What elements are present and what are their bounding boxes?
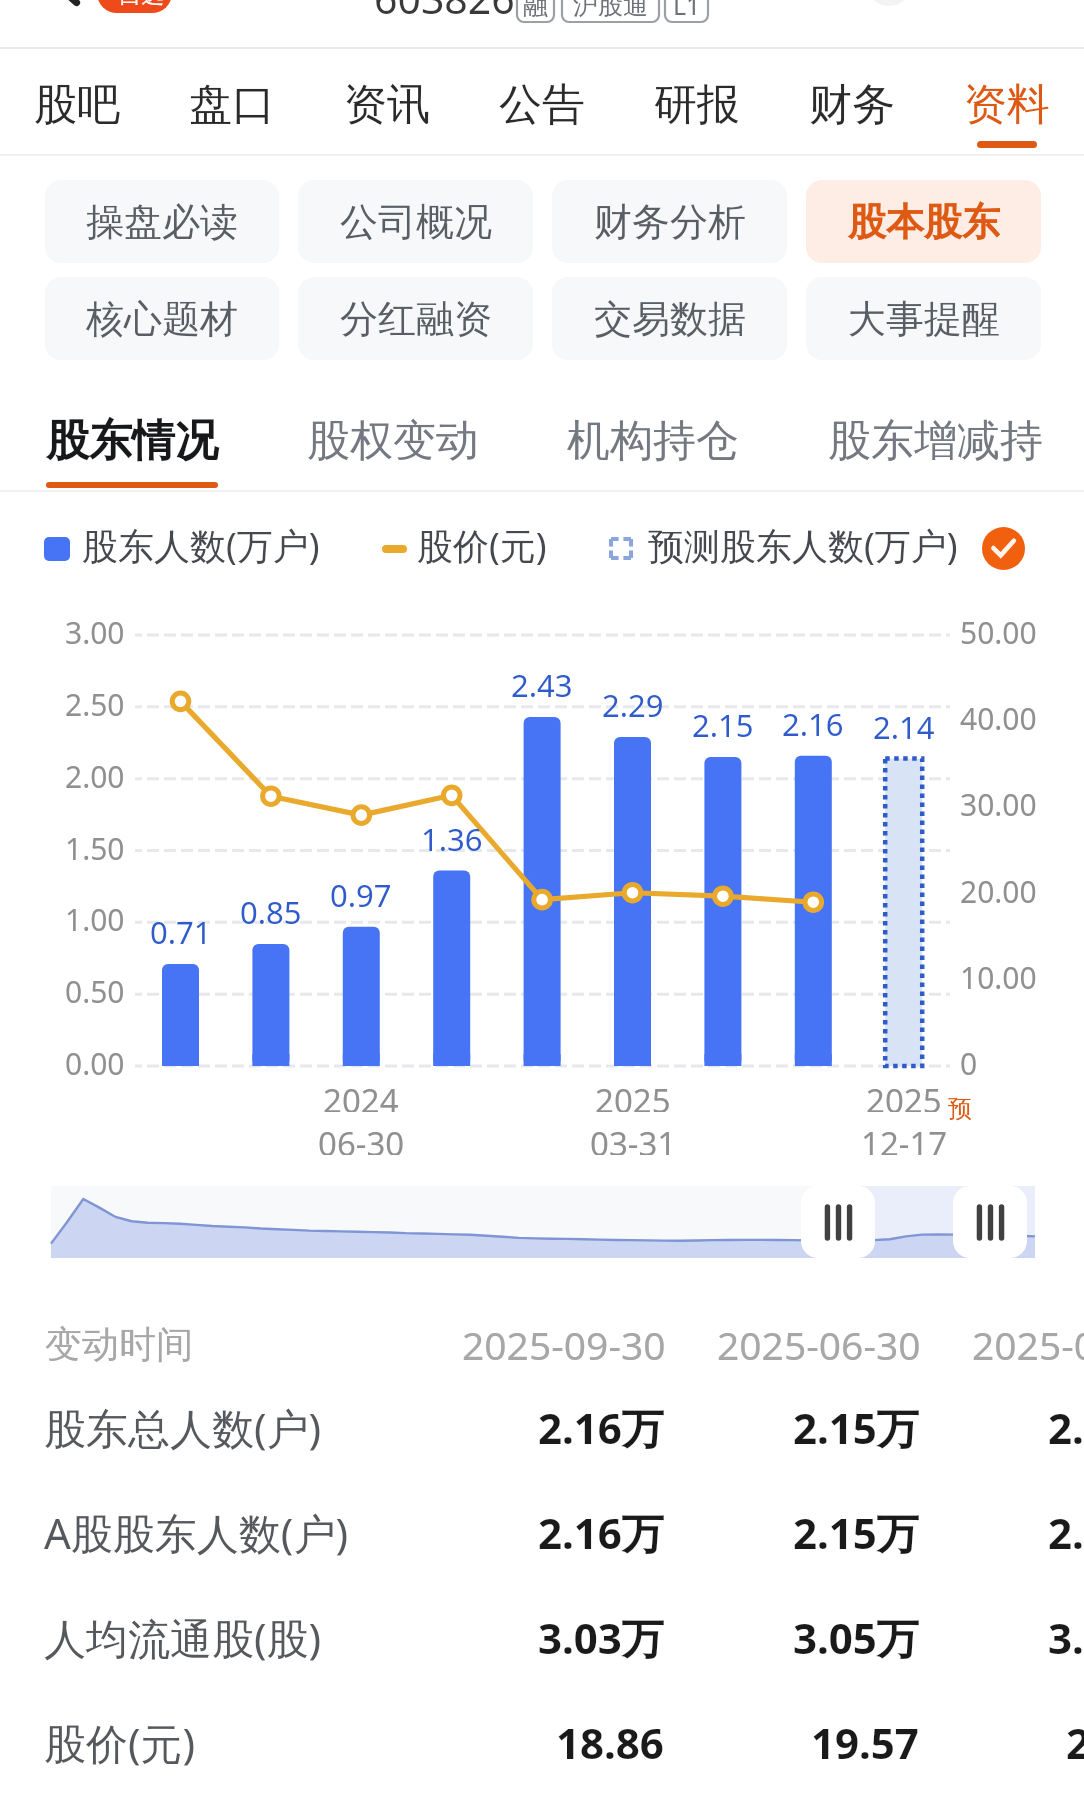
button[interactable]: 股价(元): [0, 1697, 1084, 1787]
staticText: 3.01万: [1048, 1609, 1084, 1666]
staticText: 3.00: [65, 612, 125, 653]
staticText: 融: [523, 0, 548, 21]
button[interactable]: Confirm: [982, 527, 1025, 570]
button[interactable]: 盘口: [154, 49, 309, 156]
staticText: 2.16万: [538, 1504, 664, 1561]
button[interactable]: A股股东人数(户): [0, 1487, 1084, 1577]
staticText: 0: [960, 1043, 978, 1084]
staticText: 50.00: [960, 612, 1037, 653]
staticText: 21.45: [1066, 1714, 1084, 1771]
button[interactable]: Search: [866, 0, 912, 6]
staticText: 12-17: [861, 1121, 948, 1155]
button[interactable]: 交易数据: [552, 277, 787, 360]
staticText: 预: [948, 1094, 972, 1124]
button[interactable]: +自选: [97, 0, 172, 13]
staticText: 2.50: [65, 684, 125, 725]
button[interactable]: 股东情况: [46, 404, 218, 492]
staticText: 股东增减持: [828, 414, 1043, 468]
staticText: 19.57: [811, 1714, 919, 1771]
button[interactable]: 操盘必读: [45, 180, 279, 263]
staticText: 2.14: [873, 706, 935, 748]
staticText: 06-30: [318, 1121, 405, 1155]
staticText: 2.00: [65, 756, 125, 797]
button[interactable]: Back: [52, 0, 88, 8]
staticText: 股吧: [34, 78, 120, 132]
staticText: 交易数据: [594, 295, 746, 343]
staticText: 603826: [374, 0, 515, 19]
staticText: 18.86: [556, 1714, 664, 1771]
staticText: 0.85: [240, 891, 302, 933]
staticText: 1.00: [65, 899, 125, 940]
staticText: 10.00: [960, 957, 1037, 998]
button[interactable]: 资讯: [309, 49, 464, 156]
staticText: 2.16: [782, 703, 844, 745]
button[interactable]: 公告: [464, 49, 619, 156]
button[interactable]: 财务分析: [552, 180, 787, 263]
staticText: 股东情况: [46, 414, 218, 468]
button[interactable]: 资料: [929, 49, 1084, 156]
staticText: 2025-09-30: [462, 1318, 666, 1371]
staticText: 预测股东人数(万户): [648, 521, 958, 570]
staticText: 盘口: [189, 78, 275, 132]
staticText: 2.43: [511, 664, 573, 706]
staticText: 40.00: [960, 698, 1037, 739]
button[interactable]: 分红融资: [298, 277, 533, 360]
staticText: 2.15: [692, 704, 754, 746]
staticText: 2.15万: [793, 1399, 919, 1456]
staticText: 0.50: [65, 971, 125, 1012]
staticText: 2024: [323, 1078, 399, 1112]
staticText: 股价(元): [417, 521, 547, 570]
button[interactable]: 股吧: [0, 49, 154, 156]
staticText: 变动时间: [45, 1321, 193, 1368]
staticText: 财务分析: [594, 198, 746, 246]
staticText: 公司概况: [340, 198, 492, 246]
staticText: 30.00: [960, 784, 1037, 825]
button[interactable]: 人均流通股(股): [0, 1592, 1084, 1682]
button[interactable]: 财务: [774, 49, 929, 156]
staticText: 核心题材: [86, 295, 238, 343]
button[interactable]: 大事提醒: [806, 277, 1041, 360]
staticText: 1.36: [421, 818, 483, 860]
button[interactable]: 机构持仓: [567, 404, 739, 492]
button[interactable]: Drag handle: [801, 1186, 875, 1258]
button[interactable]: Drag handle: [953, 1186, 1027, 1258]
staticText: 2025-06-30: [717, 1318, 921, 1371]
staticText: A股股东人数(户): [44, 1504, 349, 1561]
staticText: 股价(元): [44, 1714, 196, 1771]
button[interactable]: 股本股东: [806, 180, 1041, 263]
staticText: 资讯: [344, 78, 430, 132]
staticText: 20.00: [960, 871, 1037, 912]
staticText: 公告: [499, 78, 585, 132]
staticText: 股本股东: [848, 198, 1000, 246]
staticText: 大事提醒: [848, 295, 1000, 343]
button[interactable]: 研报: [619, 49, 774, 156]
staticText: +自选: [105, 0, 165, 8]
staticText: 股东人数(万户): [82, 521, 320, 570]
staticText: 0.97: [330, 874, 392, 916]
staticText: 研报: [654, 78, 740, 132]
staticText: 2025: [866, 1078, 942, 1112]
staticText: 2.15万: [793, 1504, 919, 1561]
staticText: 0.00: [65, 1043, 125, 1084]
staticText: 1.50: [65, 828, 125, 869]
button[interactable]: 核心题材: [45, 277, 279, 360]
staticText: 资料: [964, 78, 1050, 132]
staticText: 人均流通股(股): [44, 1609, 322, 1666]
staticText: 操盘必读: [86, 198, 238, 246]
staticText: 机构持仓: [567, 414, 739, 468]
staticText: 2.29: [602, 684, 664, 726]
button[interactable]: 股东总人数(户): [0, 1382, 1084, 1472]
staticText: L1: [673, 0, 701, 22]
staticText: 3.05万: [793, 1609, 919, 1666]
staticText: 2025: [595, 1078, 671, 1112]
staticText: 2025-03-31: [972, 1318, 1084, 1371]
staticText: 沪股通: [573, 0, 648, 21]
button[interactable]: 股权变动: [307, 404, 479, 492]
staticText: 2.16万: [538, 1399, 664, 1456]
staticText: 0.71: [150, 911, 212, 953]
staticText: 分红融资: [340, 295, 492, 343]
staticText: 财务: [809, 78, 895, 132]
button[interactable]: 股东增减持: [828, 404, 1043, 492]
button[interactable]: 公司概况: [298, 180, 533, 263]
staticText: 3.03万: [538, 1609, 664, 1666]
